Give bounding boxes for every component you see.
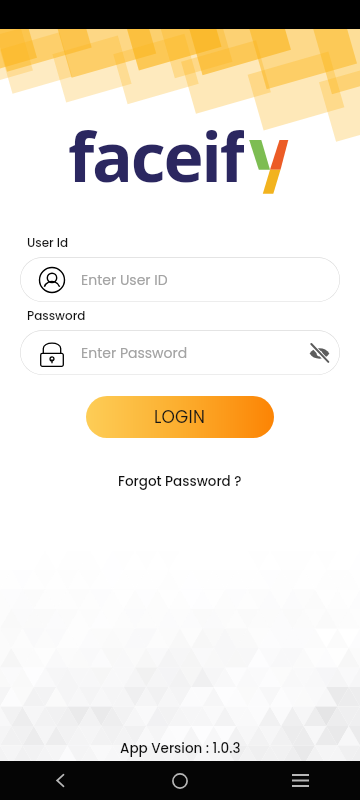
- staticText: Enter User ID: [81, 270, 168, 290]
- staticText: User Id: [27, 234, 69, 251]
- staticText: faceif: [68, 109, 244, 185]
- button[interactable]: Enter User ID: [20, 257, 340, 302]
- staticText: Forgot Password ?: [118, 472, 242, 491]
- button[interactable]: Forgot Password ?: [108, 468, 252, 495]
- staticText: Password: [27, 307, 86, 324]
- button[interactable]: Enter Password: [20, 330, 340, 375]
- button[interactable]: Recent apps: [240, 761, 360, 800]
- button[interactable]: Show password: [300, 334, 338, 372]
- button[interactable]: Back: [0, 761, 120, 800]
- button[interactable]: LOGIN: [86, 396, 274, 438]
- staticText: App Version : 1.0.3: [120, 739, 241, 758]
- staticText: LOGIN: [154, 405, 206, 429]
- button[interactable]: Home: [120, 761, 240, 800]
- staticText: Enter Password: [81, 343, 188, 363]
